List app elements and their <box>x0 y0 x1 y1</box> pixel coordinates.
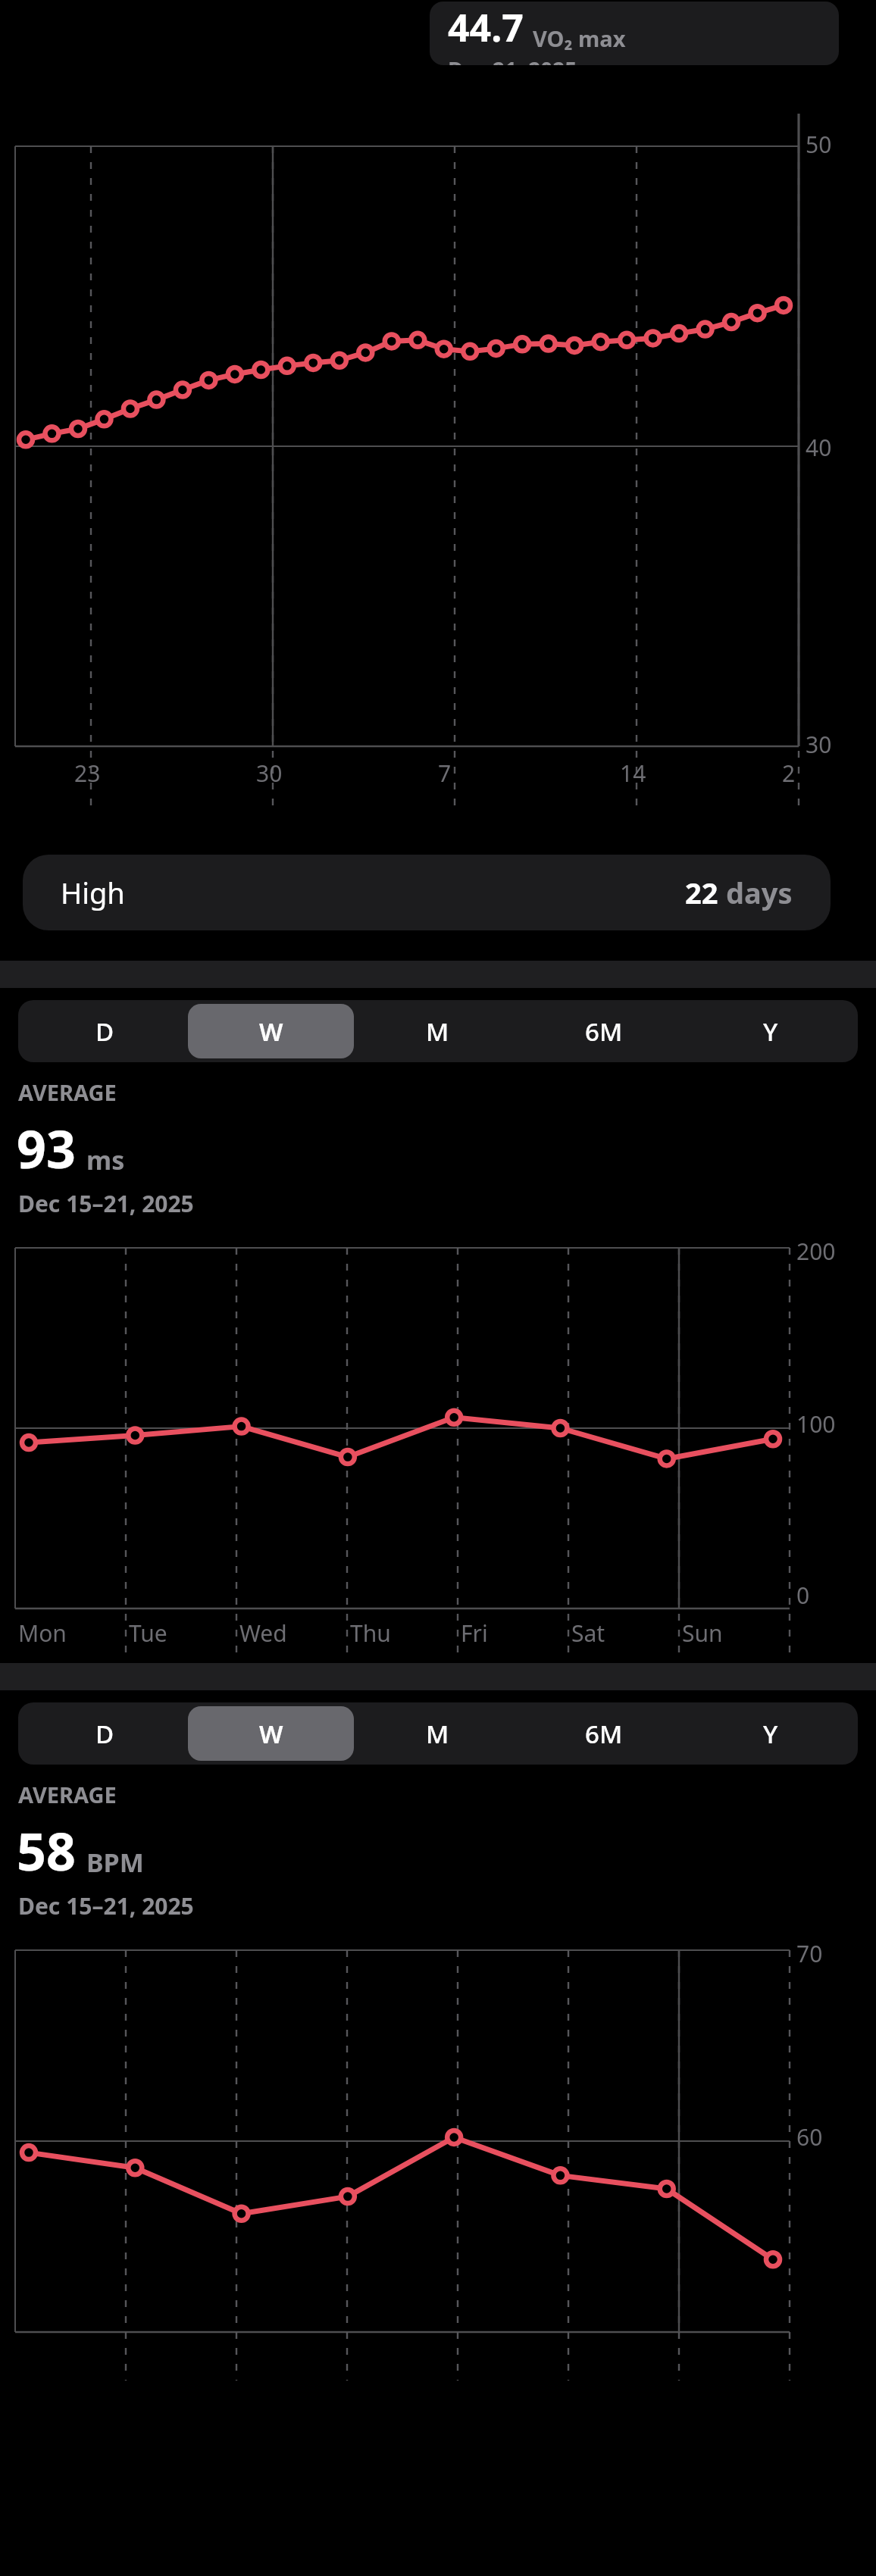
staticText: 70 <box>796 1938 823 1969</box>
staticText: 7 <box>438 758 452 789</box>
staticText: 6M <box>585 1014 623 1049</box>
staticText: Dec 21, 2025 <box>448 55 577 65</box>
staticText: ms <box>86 1143 125 1177</box>
staticText: 50 <box>806 129 832 160</box>
staticText: Thu <box>350 1618 391 1649</box>
staticText: D <box>95 1014 114 1049</box>
button[interactable]: W <box>188 1004 354 1058</box>
staticText: VO₂ max <box>533 23 626 53</box>
button[interactable]: M <box>354 1706 521 1761</box>
staticText: 6M <box>585 1717 623 1751</box>
staticText: 14 <box>620 758 646 789</box>
button[interactable]: 44.7 <box>430 2 839 65</box>
staticText: 200 <box>796 1236 836 1267</box>
staticText: Wed <box>239 1618 287 1649</box>
staticText: Sat <box>571 1618 605 1649</box>
staticText: AVERAGE <box>18 1077 117 1107</box>
button[interactable]: High <box>23 855 831 930</box>
staticText: 22 <box>685 873 718 912</box>
staticText: 58 <box>17 1815 76 1886</box>
staticText: Mon <box>18 1618 67 1649</box>
staticText: 40 <box>806 432 832 463</box>
staticText: D <box>95 1717 114 1751</box>
staticText: M <box>426 1014 449 1049</box>
staticText: Tue <box>129 1618 167 1649</box>
staticText: W <box>259 1717 283 1751</box>
button[interactable]: 6M <box>521 1004 687 1058</box>
staticText: 44.7 <box>448 2 524 53</box>
staticText: Dec 15–21, 2025 <box>18 1890 194 1921</box>
staticText: Y <box>763 1717 778 1751</box>
staticText: BPM <box>86 1845 144 1880</box>
staticText: 2 <box>782 758 796 789</box>
staticText: W <box>259 1014 283 1049</box>
staticText: days <box>726 873 793 912</box>
button[interactable]: 6M <box>521 1706 687 1761</box>
staticText: 93 <box>17 1113 76 1183</box>
staticText: Fri <box>461 1618 488 1649</box>
staticText: Sun <box>682 1618 723 1649</box>
staticText: 0 <box>796 1580 810 1611</box>
button[interactable]: M <box>354 1004 521 1058</box>
staticText: 100 <box>796 1408 836 1440</box>
staticText: 30 <box>806 729 832 760</box>
button[interactable]: W <box>188 1706 354 1761</box>
staticText: M <box>426 1717 449 1751</box>
button[interactable]: D <box>22 1706 188 1761</box>
button[interactable]: Y <box>687 1004 854 1058</box>
staticText: AVERAGE <box>18 1780 117 1809</box>
button[interactable]: D <box>22 1004 188 1058</box>
button[interactable]: Y <box>687 1706 854 1761</box>
staticText: 30 <box>256 758 283 789</box>
staticText: 60 <box>796 2121 823 2152</box>
staticText: Dec 15–21, 2025 <box>18 1188 194 1219</box>
staticText: High <box>61 873 125 912</box>
staticText: Y <box>763 1014 778 1049</box>
staticText: 23 <box>74 758 101 789</box>
